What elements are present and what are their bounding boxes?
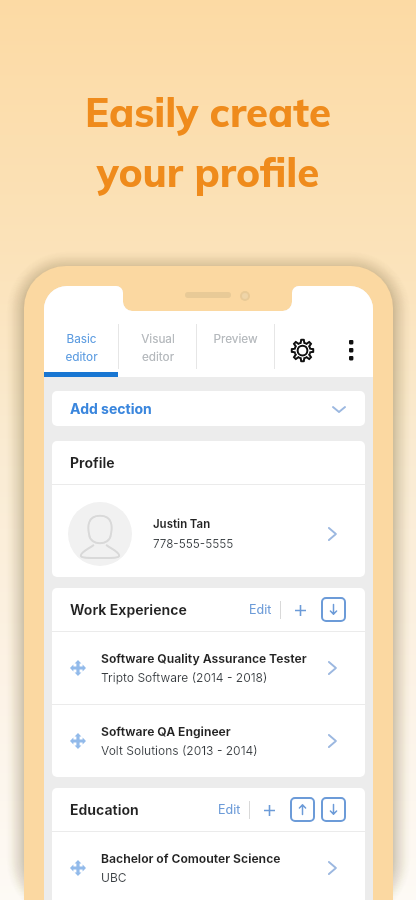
button[interactable]: Bachelor of Comouter Science [52, 832, 365, 900]
staticText: Preview [213, 332, 258, 346]
staticText: Bachelor of Comouter Science [101, 851, 281, 866]
staticText: Edit [249, 602, 272, 617]
button[interactable]: Move down [321, 797, 346, 822]
staticText: Education [70, 801, 139, 818]
staticText: Edit [218, 802, 241, 817]
staticText: Work Experience [70, 601, 187, 618]
button[interactable]: Edit [218, 802, 241, 817]
staticText: Software Quality Assurance Tester [101, 651, 307, 666]
staticText: UBC [101, 870, 127, 885]
staticText: Tripto Software (2014 - 2018) [101, 670, 268, 685]
staticText: Basic editor [65, 332, 98, 364]
staticText: Easily create your profile [85, 87, 331, 197]
staticText: 778-555-5555 [153, 537, 234, 551]
button[interactable]: Move down [321, 597, 346, 622]
button[interactable]: Visual editor [119, 286, 196, 377]
staticText: Profile [70, 454, 115, 471]
staticText: Software QA Engineer [101, 724, 231, 739]
button[interactable]: Edit [249, 602, 272, 617]
button[interactable]: Software Quality Assurance Tester [52, 632, 365, 704]
button[interactable]: Add [258, 799, 280, 821]
staticText: Justin Tan [153, 517, 211, 531]
staticText: Visual editor [141, 332, 175, 364]
button[interactable]: Justin Tan [52, 490, 365, 577]
staticText: Add section [70, 400, 152, 417]
button[interactable]: Software QA Engineer [52, 705, 365, 777]
button[interactable]: Settings [275, 286, 329, 377]
staticText: Volt Solutions (2013 - 2014) [101, 743, 258, 758]
button[interactable]: Preview [197, 286, 274, 377]
button[interactable]: Add section [52, 391, 365, 426]
button[interactable]: Add [289, 599, 311, 621]
button[interactable]: More options [329, 286, 373, 377]
button[interactable]: Basic editor [44, 286, 118, 377]
button[interactable]: Move up [290, 797, 315, 822]
